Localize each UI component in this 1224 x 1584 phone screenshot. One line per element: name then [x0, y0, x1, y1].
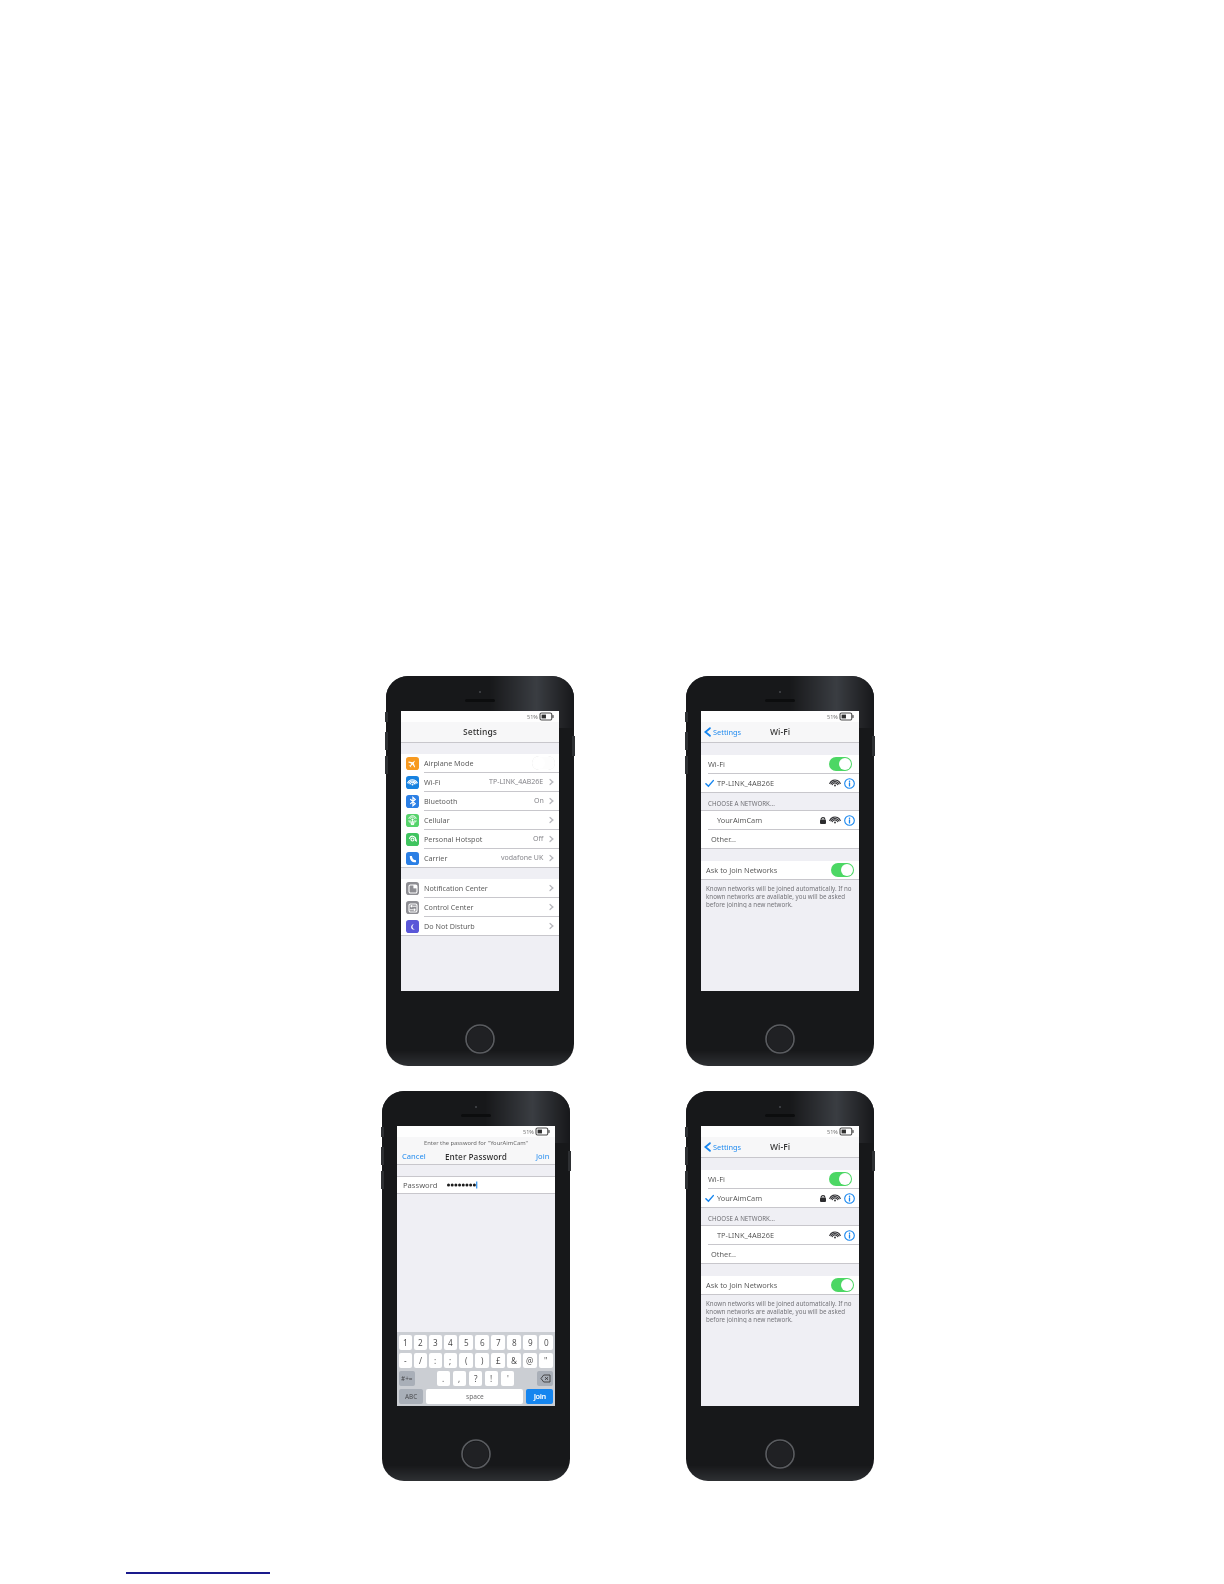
button[interactable]: 2 [414, 1335, 427, 1350]
button[interactable]: Cellular [401, 811, 559, 829]
staticText: TP-LINK_4AB26E [717, 778, 775, 788]
staticText: . [442, 1373, 445, 1384]
staticText: Other... [711, 834, 736, 844]
button[interactable]: 0 [539, 1335, 553, 1350]
staticText: ) [481, 1355, 484, 1366]
button[interactable]: Settings [704, 727, 742, 737]
staticText: ' [507, 1373, 509, 1384]
staticText: " [544, 1355, 548, 1366]
button[interactable]: : [429, 1353, 442, 1368]
button[interactable]: Personal Hotspot [401, 830, 559, 848]
staticText: 4 [448, 1337, 453, 1348]
button[interactable] [829, 757, 852, 771]
button[interactable]: More info about TP-LINK_4AB26E [844, 778, 855, 789]
button[interactable]: Password [397, 1177, 555, 1193]
button[interactable]: . [437, 1371, 450, 1386]
staticText: Notification Center [424, 883, 488, 893]
staticText: 0 [544, 1337, 549, 1348]
staticText: Carrier [424, 853, 448, 863]
staticText: On [534, 796, 544, 806]
button[interactable]: Wi-Fi [701, 755, 859, 773]
button[interactable]: ! [485, 1371, 498, 1386]
button[interactable]: Join [536, 1151, 555, 1161]
button[interactable]: Wi-Fi [701, 1170, 859, 1188]
staticText: vodafone UK [501, 853, 544, 863]
button[interactable]: More info about YourAimCam [844, 1193, 855, 1204]
button[interactable]: TP-LINK_4AB26E [701, 1226, 859, 1244]
button[interactable] [829, 1172, 852, 1186]
staticText: 51% [827, 1128, 838, 1135]
button[interactable]: ? [469, 1371, 482, 1386]
staticText: Airplane Mode [424, 758, 474, 768]
button[interactable]: ABC [399, 1389, 423, 1404]
staticText: Wi-Fi [708, 1174, 725, 1184]
button[interactable]: Settings [704, 1142, 742, 1152]
button[interactable]: 3 [429, 1335, 442, 1350]
button[interactable] [831, 863, 854, 877]
button[interactable]: 8 [507, 1335, 521, 1350]
button[interactable]: Other... [701, 830, 859, 848]
button[interactable]: More info about YourAimCam [844, 815, 855, 826]
button[interactable]: ; [444, 1353, 457, 1368]
button[interactable] [831, 1278, 854, 1292]
button[interactable]: - [399, 1353, 412, 1368]
button[interactable]: 4 [444, 1335, 457, 1350]
button[interactable]: 6 [475, 1335, 489, 1350]
button[interactable]: ) [475, 1353, 489, 1368]
button[interactable]: Bluetooth [401, 792, 559, 810]
button[interactable]: Ask to Join Networks [701, 861, 859, 879]
button[interactable]: 9 [523, 1335, 537, 1350]
button[interactable]: space [426, 1389, 523, 1404]
button[interactable]: Join [526, 1389, 553, 1404]
button[interactable]: Airplane Mode [401, 754, 559, 772]
staticText: YourAimCam [717, 1193, 763, 1203]
button[interactable]: Carrier [401, 849, 559, 867]
staticText: 51% [527, 713, 538, 720]
staticText: @ [526, 1355, 534, 1366]
button[interactable]: @ [523, 1353, 537, 1368]
staticText: TP-LINK_4AB26E [717, 1230, 775, 1240]
staticText: 51% [827, 713, 838, 720]
button[interactable]: 1 [399, 1335, 412, 1350]
button[interactable]: Wi-Fi [401, 773, 559, 791]
staticText: Personal Hotspot [424, 834, 483, 844]
button[interactable]: #+= [399, 1371, 415, 1386]
button[interactable]: Cancel [397, 1151, 426, 1161]
staticText: : [434, 1355, 437, 1366]
staticText: Ask to Join Networks [706, 1280, 778, 1290]
button[interactable]: Backspace [537, 1371, 553, 1386]
staticText: 6 [480, 1337, 485, 1348]
staticText: 5 [464, 1337, 469, 1348]
staticText: Known networks will be joined automatica… [706, 884, 854, 908]
staticText: 9 [528, 1337, 533, 1348]
staticText: Other... [711, 1249, 736, 1259]
button[interactable]: & [507, 1353, 521, 1368]
staticText: ! [490, 1373, 493, 1384]
button[interactable]: Notification Center [401, 879, 559, 897]
button[interactable]: , [453, 1371, 466, 1386]
button[interactable]: YourAimCam [701, 1189, 859, 1207]
button[interactable]: Control Center [401, 898, 559, 916]
staticText: Bluetooth [424, 796, 458, 806]
button[interactable]: £ [491, 1353, 505, 1368]
staticText: Join [534, 1392, 546, 1401]
button[interactable]: / [414, 1353, 427, 1368]
staticText: Known networks will be joined automatica… [706, 1299, 854, 1323]
button[interactable]: ( [459, 1353, 473, 1368]
button[interactable]: Other... [701, 1245, 859, 1263]
button[interactable]: 5 [459, 1335, 473, 1350]
staticText: Password [403, 1180, 438, 1190]
button[interactable]: Ask to Join Networks [701, 1276, 859, 1294]
button[interactable]: " [539, 1353, 553, 1368]
button[interactable]: 7 [491, 1335, 505, 1350]
button[interactable]: ' [501, 1371, 514, 1386]
staticText: 8 [512, 1337, 517, 1348]
button[interactable]: YourAimCam [701, 811, 859, 829]
staticText: , [458, 1373, 461, 1384]
staticText: 7 [496, 1337, 501, 1348]
button[interactable]: More info about TP-LINK_4AB26E [844, 1230, 855, 1241]
button[interactable]: TP-LINK_4AB26E [701, 774, 859, 792]
staticText: Off [533, 834, 544, 844]
button[interactable]: Do Not Disturb [401, 917, 559, 935]
